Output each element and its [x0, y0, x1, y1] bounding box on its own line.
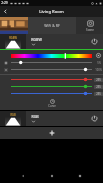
button[interactable]: RGBW	[26, 34, 85, 49]
staticText: RGB	[10, 113, 16, 117]
button[interactable]: Power toggle	[85, 34, 103, 49]
button[interactable]: 5%	[0, 59, 103, 66]
button[interactable]: Light RGB	[0, 111, 26, 126]
staticText: 100%	[95, 68, 102, 72]
button[interactable]: Home	[46, 170, 58, 182]
button[interactable]: Curve	[44, 98, 60, 109]
staticText: Curve	[48, 104, 56, 108]
button[interactable]: 100%	[0, 66, 103, 73]
staticText: 5%	[97, 61, 101, 65]
button[interactable]: Back	[0, 6, 11, 17]
button[interactable]: Light RGBW	[0, 34, 26, 49]
staticText: RGBW	[9, 36, 17, 40]
staticText: Living Room	[39, 9, 64, 15]
button[interactable]: Back	[17, 170, 29, 182]
staticText: 255	[96, 85, 101, 89]
button[interactable]: Power toggle	[85, 111, 103, 126]
staticText: RGB	[31, 114, 39, 119]
button[interactable]: Scene	[76, 17, 103, 34]
staticText: RGBW	[31, 37, 42, 42]
staticText: 255	[96, 78, 101, 82]
staticText: 2:29	[1, 1, 8, 5]
button[interactable]: Room photo	[0, 17, 28, 34]
button[interactable]: Add device	[0, 127, 103, 139]
button[interactable]: WiFi & RF	[28, 17, 76, 34]
staticText: WiFi & RF	[44, 23, 60, 28]
button[interactable]: 255	[0, 90, 103, 97]
staticText: 255	[96, 92, 101, 96]
button[interactable]: 255	[0, 83, 103, 90]
button[interactable]: 255	[0, 76, 103, 83]
button[interactable]: RGB	[26, 111, 85, 126]
staticText: Scene	[86, 28, 94, 32]
button[interactable]: Recent apps	[74, 170, 86, 182]
button[interactable]	[0, 52, 103, 59]
